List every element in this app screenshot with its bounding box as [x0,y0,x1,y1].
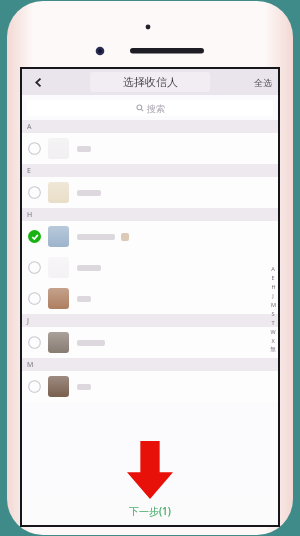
button[interactable]: S [269,309,277,318]
button[interactable]: E [269,273,277,282]
staticText: H [271,283,276,290]
button[interactable]: 搜索 [27,100,273,116]
button[interactable]: 無 [269,345,277,354]
button[interactable] [22,283,278,314]
button[interactable]: Back [22,69,54,95]
staticText: J [27,316,29,326]
button[interactable] [22,327,278,358]
button[interactable] [22,252,278,283]
staticText: T [271,319,275,326]
button[interactable]: M [269,300,277,309]
staticText: J [272,292,274,299]
staticText: 搜索 [147,103,165,114]
staticText: 下一步(1) [129,504,171,518]
button[interactable] [22,177,278,208]
staticText: 無 [270,346,276,353]
staticText: H [27,210,33,220]
button[interactable]: W [269,327,277,336]
button[interactable] [22,371,278,402]
staticText: A [27,122,32,132]
staticText: E [271,274,275,281]
button[interactable]: J [269,291,277,300]
staticText: 选择收信人 [123,75,178,89]
button[interactable] [22,221,278,252]
button[interactable]: A [269,264,277,273]
staticText: 全选 [254,77,272,88]
staticText: W [270,328,276,335]
button[interactable]: T [269,318,277,327]
button[interactable]: 下一步(1) [22,497,278,525]
staticText: X [271,337,275,344]
staticText: S [271,310,275,317]
button[interactable]: X [269,336,277,345]
button[interactable]: H [269,282,277,291]
staticText: A [271,265,275,272]
staticText: E [27,166,31,176]
button[interactable] [22,133,278,164]
staticText: M [27,360,34,370]
staticText: M [271,301,276,308]
button[interactable]: 全选 [248,69,278,95]
